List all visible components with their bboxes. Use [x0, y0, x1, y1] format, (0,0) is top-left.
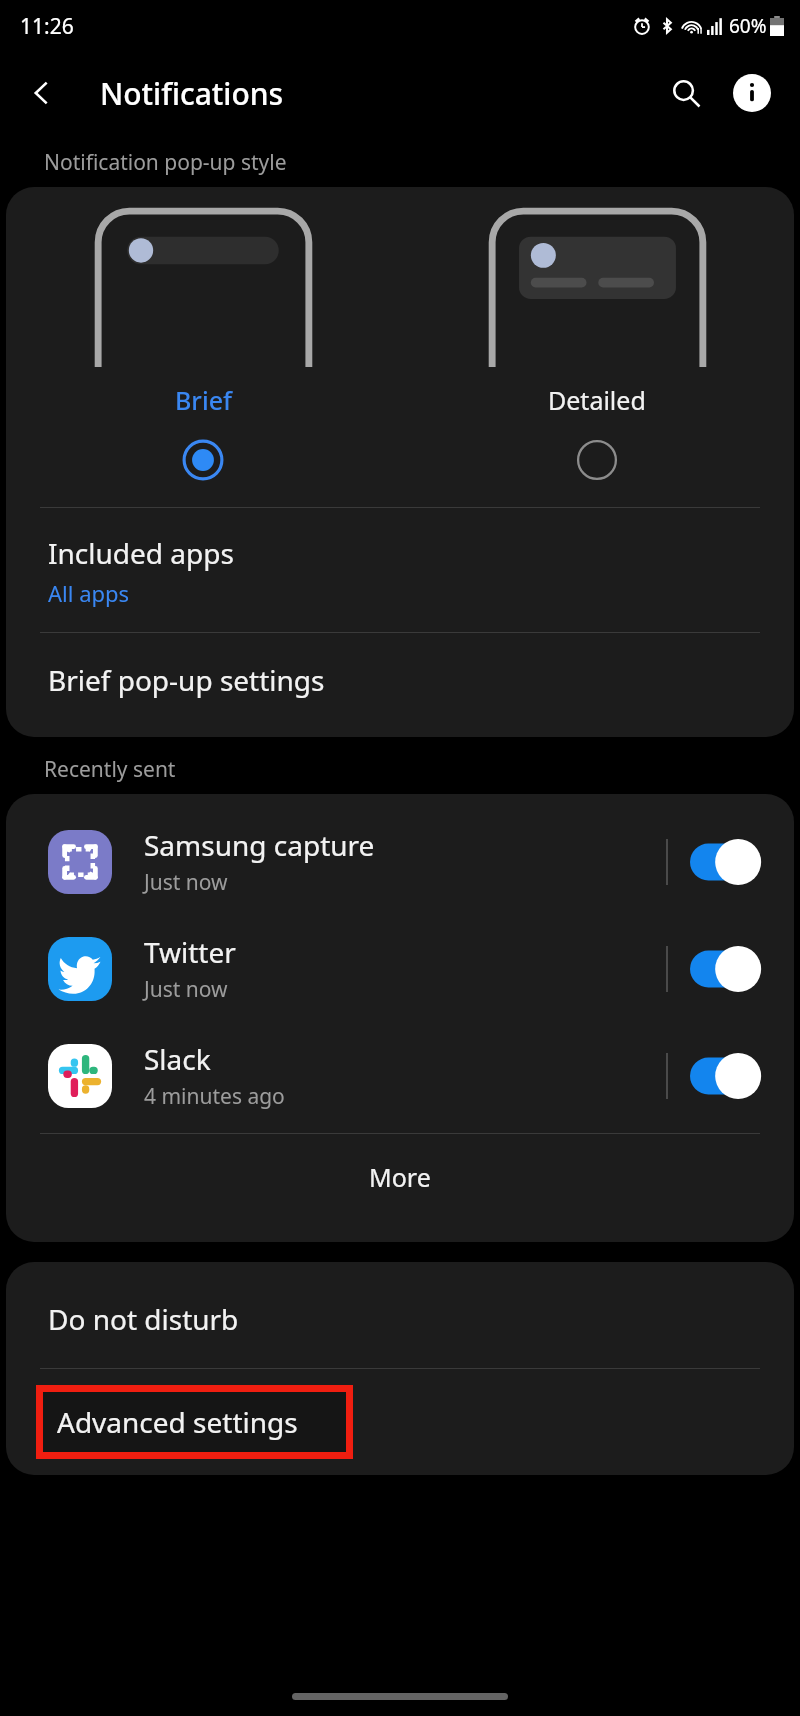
button[interactable]: Information	[726, 67, 778, 119]
staticText: Brief pop-up settings	[48, 661, 325, 699]
staticText: Do not disturb	[48, 1300, 239, 1338]
button[interactable]: Toggle Samsung capture notifications	[690, 839, 766, 885]
staticText: Recently sent	[44, 755, 176, 784]
staticText: Just now	[144, 868, 228, 897]
staticText: Twitter	[144, 933, 236, 971]
staticText: More	[369, 1160, 431, 1194]
staticText: Notifications	[100, 73, 284, 114]
staticText: 60%	[729, 13, 767, 39]
staticText: Samsung capture	[144, 826, 375, 864]
staticText: 11:26	[20, 12, 74, 41]
staticText: Notification pop-up style	[44, 148, 287, 177]
staticText: All apps	[48, 578, 130, 608]
button[interactable]	[400, 439, 794, 481]
staticText: Just now	[144, 975, 228, 1004]
button[interactable]: Samsung capture	[6, 808, 794, 915]
button[interactable]: Slack	[6, 1022, 794, 1129]
staticText: Included apps	[48, 534, 234, 572]
button[interactable]: Advanced settings	[6, 1369, 794, 1469]
button[interactable]: Toggle Slack notifications	[690, 1053, 766, 1099]
button[interactable]: Included apps	[6, 508, 794, 632]
button[interactable]: More	[6, 1134, 794, 1220]
button[interactable]: Do not disturb	[6, 1272, 794, 1368]
staticText: Advanced settings	[57, 1403, 298, 1441]
button[interactable]: Twitter	[6, 915, 794, 1022]
staticText: 4 minutes ago	[144, 1082, 285, 1111]
staticText: Detailed	[548, 383, 646, 417]
staticText: Brief	[175, 383, 232, 417]
button[interactable]: Search	[660, 67, 712, 119]
button[interactable]: Back	[16, 67, 68, 119]
button[interactable]	[6, 439, 400, 481]
button[interactable]: Toggle Twitter notifications	[690, 946, 766, 992]
staticText: Slack	[144, 1040, 211, 1078]
button[interactable]: Brief pop-up settings	[6, 633, 794, 729]
